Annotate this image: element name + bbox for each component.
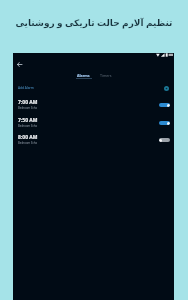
button[interactable]: Timers bbox=[94, 71, 118, 79]
staticText: Bedroom Echo bbox=[18, 106, 38, 110]
button[interactable]: 7:00 AM bbox=[13, 96, 174, 113]
staticText: 7:00 AM bbox=[18, 99, 38, 106]
button[interactable]: Back bbox=[13, 58, 25, 70]
staticText: Alarms bbox=[77, 73, 90, 78]
button[interactable]: Toggle alarm bbox=[159, 121, 170, 125]
button[interactable]: 8:00 AM bbox=[13, 131, 174, 148]
button[interactable]: Add alarm bbox=[162, 84, 171, 93]
button[interactable]: Toggle alarm bbox=[159, 138, 170, 142]
staticText: Bedroom Echo bbox=[18, 124, 38, 128]
button[interactable]: Alarms bbox=[71, 71, 95, 79]
button[interactable]: 7:50 AM bbox=[13, 114, 174, 131]
staticText: 7:50 AM bbox=[18, 117, 38, 124]
button[interactable]: Toggle alarm bbox=[159, 103, 170, 107]
staticText: Timers bbox=[100, 73, 112, 78]
staticText: Bedroom Echo bbox=[18, 141, 38, 145]
staticText: 8:00 AM bbox=[18, 134, 38, 141]
button[interactable]: Add Alarm bbox=[13, 82, 174, 95]
staticText: Add Alarm bbox=[18, 86, 34, 90]
staticText: تنظیم آلارم حالت تاریکی و روشنایی bbox=[15, 16, 173, 28]
